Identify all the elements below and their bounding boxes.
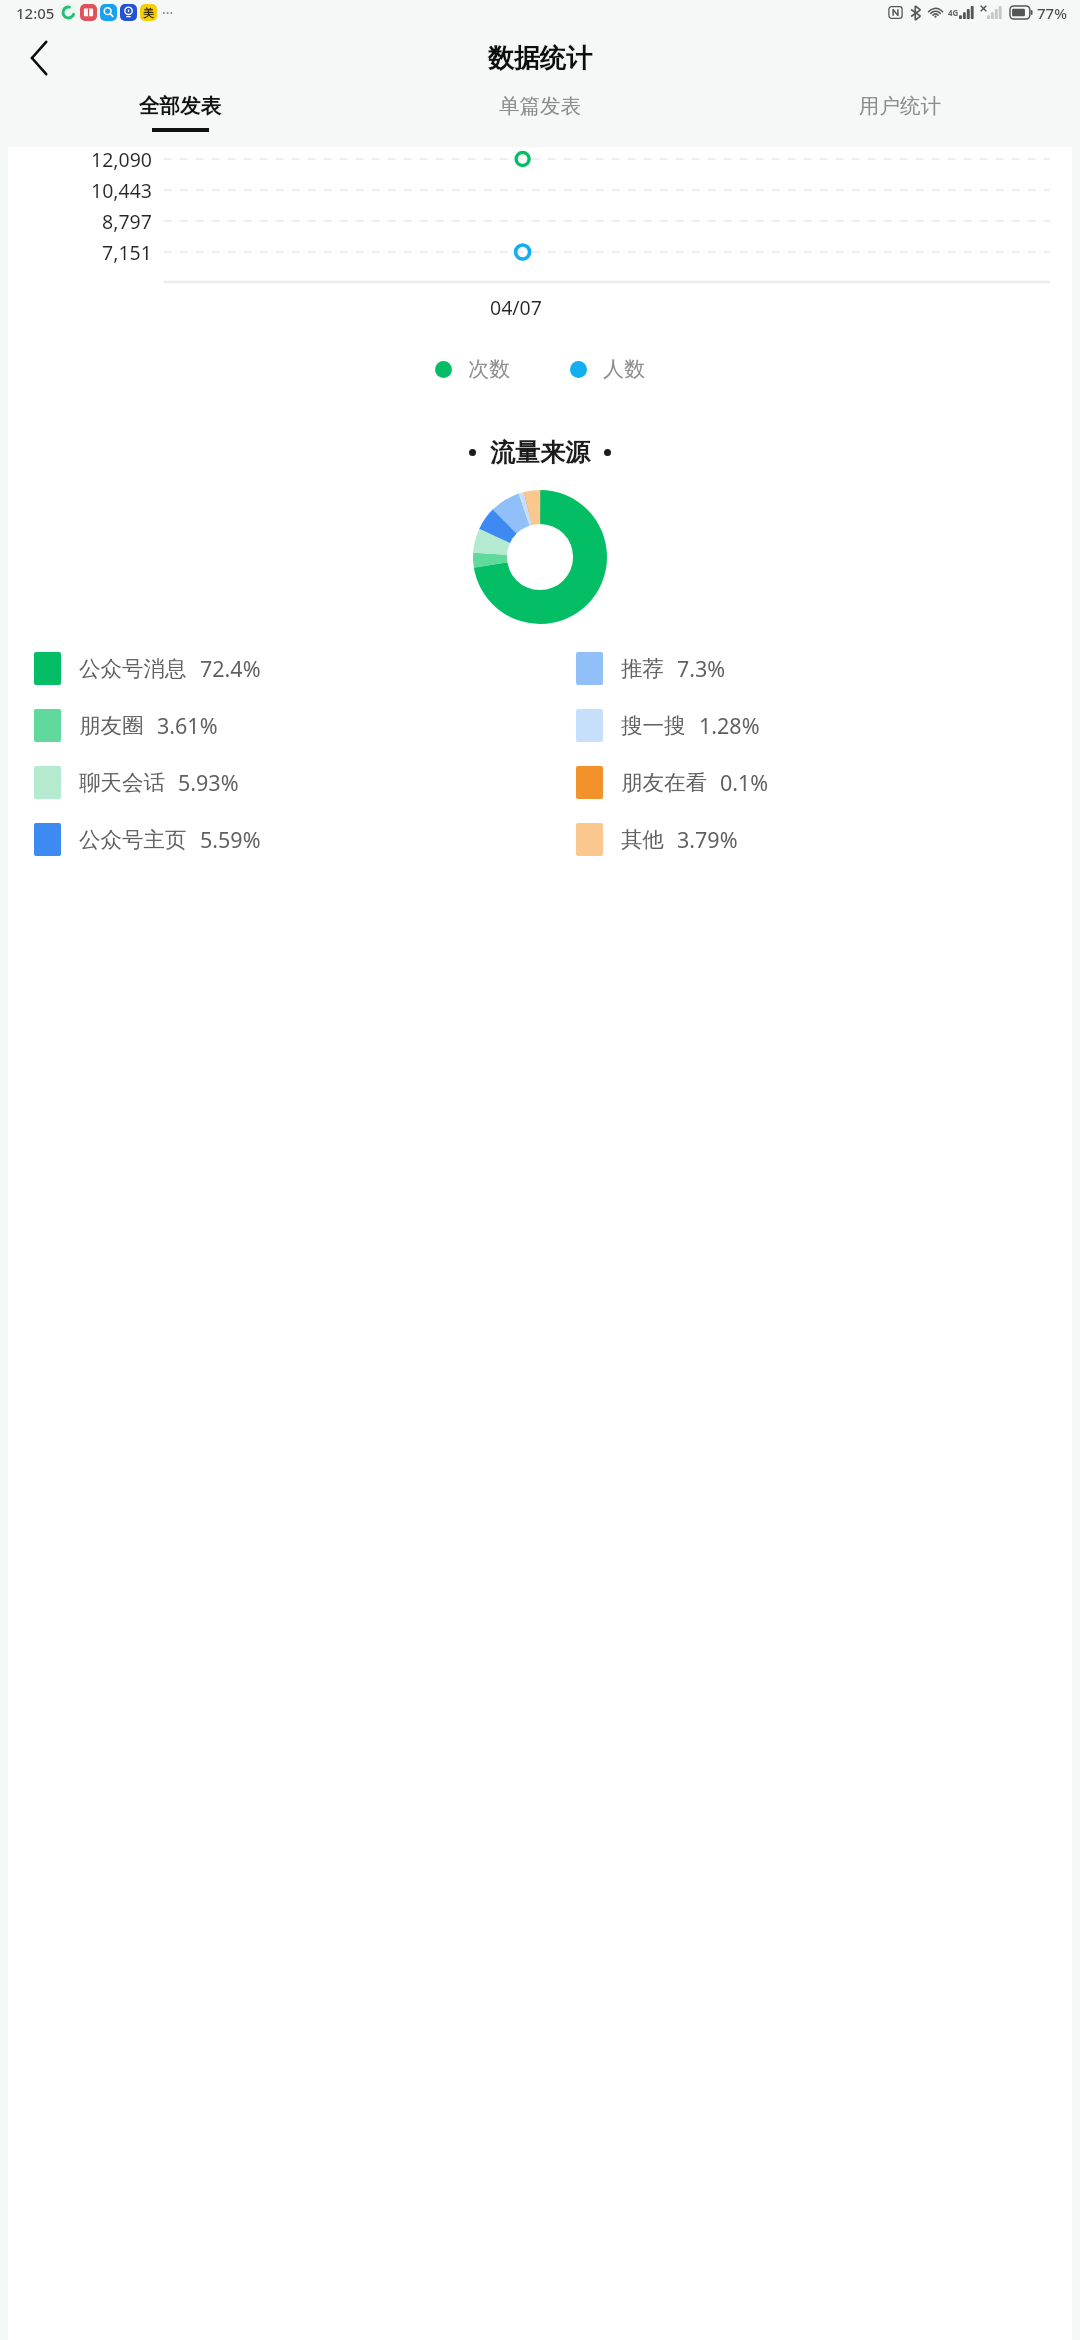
staticText: 其他 bbox=[621, 826, 664, 853]
button[interactable]: 人数 bbox=[570, 356, 645, 382]
staticText: 公众号主页 bbox=[79, 826, 187, 853]
button[interactable]: 聊天会话 bbox=[34, 766, 239, 799]
staticText: 用户统计 bbox=[859, 93, 941, 119]
staticText: 数据统计 bbox=[488, 42, 592, 75]
staticText: ··· bbox=[162, 3, 174, 22]
button[interactable]: 朋友圈 bbox=[34, 709, 218, 742]
staticText: 美 bbox=[143, 6, 154, 20]
staticText: 公众号消息 bbox=[79, 655, 187, 682]
staticText: 朋友在看 bbox=[621, 769, 707, 796]
staticText: 12,090 bbox=[91, 146, 152, 172]
staticText: 全部发表 bbox=[139, 93, 221, 119]
staticText: 5.93% bbox=[178, 768, 239, 797]
staticText: 流量来源 bbox=[490, 437, 590, 468]
staticText: 72.4% bbox=[200, 654, 261, 683]
staticText: 搜一搜 bbox=[621, 712, 686, 739]
button[interactable]: 搜一搜 bbox=[576, 709, 760, 742]
staticText: 单篇发表 bbox=[499, 93, 581, 119]
button[interactable]: 推荐 bbox=[576, 652, 726, 685]
button[interactable]: 全部发表 bbox=[0, 91, 360, 147]
staticText: 推荐 bbox=[621, 655, 664, 682]
staticText: 7.3% bbox=[677, 654, 726, 683]
staticText: 朋友圈 bbox=[79, 712, 144, 739]
staticText: 77% bbox=[1037, 3, 1067, 23]
staticText: 1.28% bbox=[699, 711, 760, 740]
staticText: 4G bbox=[948, 7, 959, 18]
button[interactable]: 单篇发表 bbox=[360, 91, 720, 147]
button[interactable]: 用户统计 bbox=[720, 91, 1080, 147]
staticText: 10,443 bbox=[91, 177, 152, 203]
staticText: 04/07 bbox=[490, 294, 542, 321]
button[interactable]: 其他 bbox=[576, 823, 738, 856]
button[interactable]: 次数 bbox=[435, 356, 510, 382]
staticText: 0.1% bbox=[720, 768, 769, 797]
staticText: 5.59% bbox=[200, 825, 261, 854]
staticText: 次数 bbox=[468, 356, 510, 382]
staticText: 聊天会话 bbox=[79, 769, 165, 796]
staticText: 7,151 bbox=[102, 239, 152, 265]
staticText: 3.61% bbox=[157, 711, 218, 740]
staticText: 人数 bbox=[603, 356, 645, 382]
button[interactable]: 公众号消息 bbox=[34, 652, 261, 685]
staticText: 3.79% bbox=[677, 825, 738, 854]
button[interactable]: 朋友在看 bbox=[576, 766, 769, 799]
button[interactable]: Back bbox=[10, 29, 68, 87]
button[interactable]: 公众号主页 bbox=[34, 823, 261, 856]
staticText: 8,797 bbox=[102, 208, 152, 234]
staticText: 12:05 bbox=[16, 3, 55, 23]
